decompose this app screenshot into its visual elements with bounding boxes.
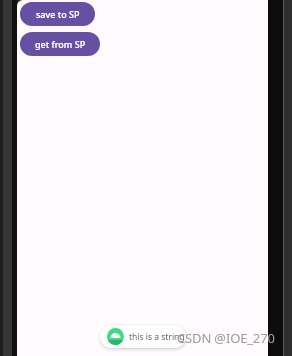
staticText: save to SP <box>36 8 80 20</box>
button[interactable]: save to SP <box>20 2 95 26</box>
staticText: this is a string <box>129 331 185 343</box>
button[interactable]: get from SP <box>20 32 100 56</box>
staticText: get from SP <box>35 38 86 50</box>
staticText: CSDN @IOE_270 <box>177 329 275 347</box>
